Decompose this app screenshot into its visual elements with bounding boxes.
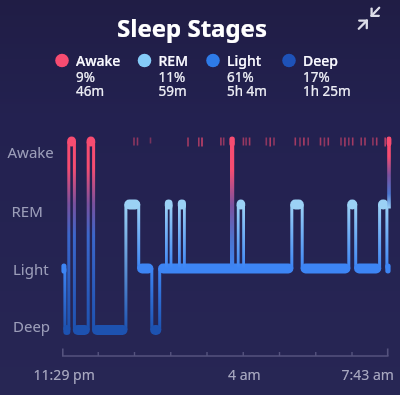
- button[interactable]: [352, 2, 386, 36]
